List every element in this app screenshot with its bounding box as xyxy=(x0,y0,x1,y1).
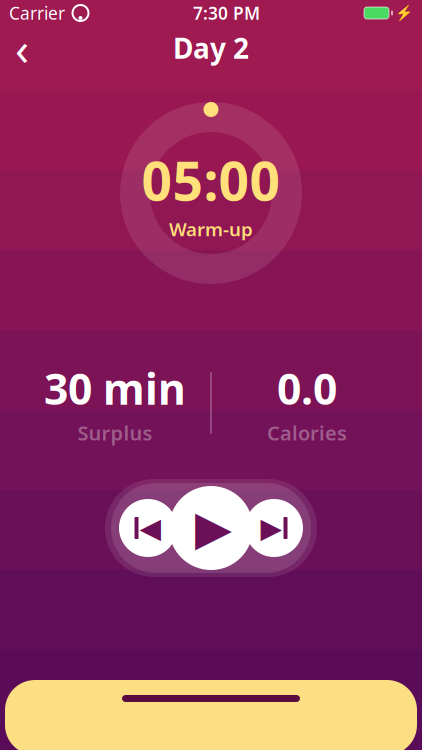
staticText: Warm-up xyxy=(169,216,253,241)
staticText: ‹ xyxy=(15,18,29,78)
button[interactable]: Previous xyxy=(119,499,177,557)
staticText: ▶ xyxy=(260,512,282,544)
staticText: Carrier xyxy=(9,1,65,24)
staticText: Day 2 xyxy=(173,29,249,67)
staticText: ▶ xyxy=(195,501,232,555)
staticText: Calories xyxy=(267,420,347,446)
staticText: Surplus xyxy=(77,420,152,446)
staticText: 7:30 PM xyxy=(193,1,260,24)
staticText: ⚡ xyxy=(395,5,413,21)
staticText: 30 min xyxy=(44,360,186,417)
staticText: 05:00 xyxy=(141,145,280,215)
button[interactable]: Next xyxy=(245,499,303,557)
staticText: ◀ xyxy=(139,512,161,544)
button[interactable]: Back xyxy=(0,26,44,70)
button[interactable]: Play xyxy=(169,486,253,570)
staticText: 0.0 xyxy=(277,360,337,417)
